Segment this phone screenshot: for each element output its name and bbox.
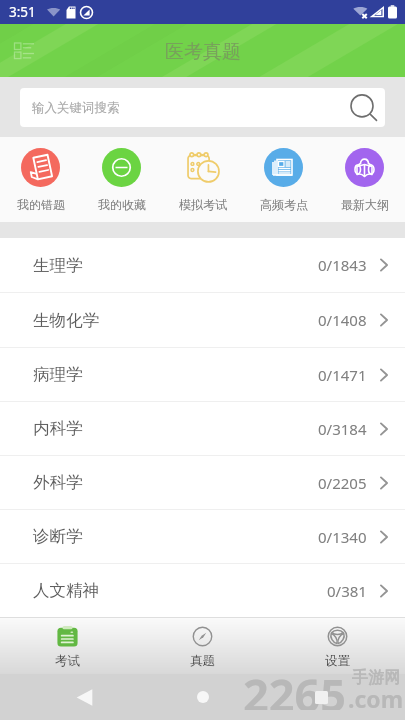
button[interactable]: Recent apps xyxy=(284,674,358,720)
button[interactable]: 生物化学 xyxy=(0,293,405,347)
button[interactable]: 病理学 xyxy=(0,348,405,401)
staticText: 0/2205 xyxy=(318,473,367,493)
staticText: 生物化学 xyxy=(33,310,99,331)
staticText: 设置 xyxy=(325,653,350,669)
staticText: 人文精神 xyxy=(33,580,99,601)
staticText: 2265 xyxy=(243,664,346,710)
button[interactable]: 输入关键词搜索 xyxy=(20,88,385,127)
staticText: 外科学 xyxy=(33,472,83,493)
staticText: 输入关键词搜索 xyxy=(32,100,120,116)
staticText: 3:51 xyxy=(9,3,36,21)
staticText: 我的收藏 xyxy=(98,197,146,212)
button[interactable]: 考试 xyxy=(0,618,135,674)
staticText: 0/381 xyxy=(327,581,367,601)
button[interactable]: Home xyxy=(166,674,240,720)
staticText: 考试 xyxy=(55,653,80,669)
staticText: 手游网 xyxy=(352,668,400,688)
button[interactable]: 高频考点 xyxy=(243,137,324,222)
staticText: 内科学 xyxy=(33,418,83,439)
staticText: 0/1340 xyxy=(318,527,367,547)
button[interactable]: 我的错题 xyxy=(0,137,81,222)
button[interactable]: Back xyxy=(47,674,121,720)
button[interactable]: 模拟考试 xyxy=(162,137,243,222)
staticText: 医考真题 xyxy=(165,40,241,64)
staticText: .com xyxy=(348,683,404,714)
button[interactable]: 真题 xyxy=(135,618,270,674)
staticText: 0/1471 xyxy=(318,365,367,385)
staticText: 0/3184 xyxy=(318,419,367,439)
staticText: 0/1843 xyxy=(318,255,367,275)
staticText: 我的错题 xyxy=(17,197,65,212)
button[interactable]: 设置 xyxy=(270,618,405,674)
button[interactable]: 我的收藏 xyxy=(81,137,162,222)
button[interactable]: 内科学 xyxy=(0,402,405,455)
button[interactable]: 外科学 xyxy=(0,456,405,509)
staticText: 诊断学 xyxy=(33,526,83,547)
staticText: 生理学 xyxy=(33,255,83,276)
staticText: 真题 xyxy=(190,653,215,669)
button[interactable]: 诊断学 xyxy=(0,510,405,563)
staticText: 模拟考试 xyxy=(179,197,227,212)
button[interactable]: 人文精神 xyxy=(0,564,405,617)
button[interactable]: 最新大纲 xyxy=(324,137,405,222)
staticText: 病理学 xyxy=(33,364,83,385)
staticText: 0/1408 xyxy=(318,310,367,330)
staticText: 高频考点 xyxy=(260,197,308,212)
staticText: 最新大纲 xyxy=(341,197,389,212)
button[interactable]: 生理学 xyxy=(0,238,405,292)
